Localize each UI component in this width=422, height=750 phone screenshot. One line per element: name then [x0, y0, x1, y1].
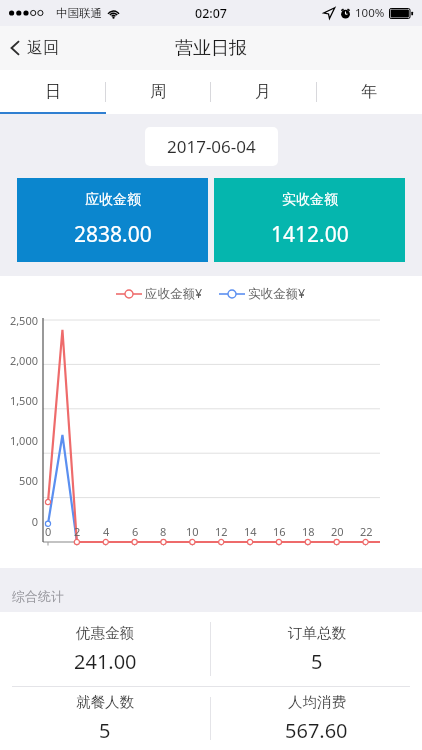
- staticText: 人均消费: [288, 693, 346, 711]
- button[interactable]: 应收金额: [17, 178, 208, 262]
- button[interactable]: 就餐人数: [0, 687, 210, 750]
- staticText: 应收金额: [85, 191, 141, 209]
- staticText: 0: [45, 524, 52, 539]
- button[interactable]: 订单总数: [211, 612, 422, 686]
- staticText: 返回: [27, 38, 59, 58]
- button[interactable]: 优惠金额: [0, 612, 210, 686]
- staticText: 18: [302, 524, 315, 539]
- staticText: 4: [103, 524, 110, 539]
- staticText: 2,000: [9, 353, 38, 368]
- staticText: 实收金额: [282, 191, 338, 209]
- staticText: 16: [273, 524, 286, 539]
- button[interactable]: 周: [105, 70, 210, 114]
- staticText: 订单总数: [288, 624, 346, 642]
- staticText: 500: [19, 473, 38, 488]
- staticText: 2838.00: [74, 220, 152, 249]
- staticText: 241.00: [74, 648, 137, 675]
- staticText: 5: [99, 717, 111, 744]
- staticText: 22: [360, 524, 373, 539]
- staticText: 567.60: [285, 717, 348, 744]
- staticText: 综合统计: [12, 588, 64, 604]
- staticText: 日: [45, 82, 61, 102]
- staticText: 02:07: [195, 5, 228, 22]
- staticText: 2017-06-04: [167, 135, 256, 158]
- button[interactable]: 人均消费: [211, 687, 422, 750]
- staticText: 0: [31, 514, 38, 529]
- staticText: 营业日报: [175, 37, 247, 60]
- button[interactable]: 月: [210, 70, 316, 114]
- staticText: 12: [215, 524, 228, 539]
- staticText: 1,500: [9, 393, 38, 408]
- staticText: 6: [132, 524, 139, 539]
- staticText: 2,500: [9, 313, 38, 328]
- staticText: 年: [361, 82, 377, 102]
- staticText: 应收金额¥: [145, 285, 203, 302]
- staticText: 5: [311, 648, 323, 675]
- button[interactable]: 年: [316, 70, 422, 114]
- button[interactable]: 返回: [0, 32, 69, 64]
- staticText: 就餐人数: [76, 693, 134, 711]
- staticText: 2: [74, 524, 81, 539]
- staticText: 中国联通: [56, 6, 102, 20]
- staticText: 周: [150, 82, 166, 102]
- staticText: 1,000: [9, 433, 38, 448]
- staticText: 优惠金额: [76, 624, 134, 642]
- button[interactable]: 2017-06-04: [145, 127, 278, 166]
- staticText: 实收金额¥: [248, 285, 306, 302]
- button[interactable]: 实收金额: [214, 178, 405, 262]
- staticText: 14: [244, 524, 257, 539]
- staticText: 100%: [355, 5, 385, 21]
- staticText: 1412.00: [271, 220, 349, 249]
- button[interactable]: 日: [0, 70, 105, 114]
- staticText: 月: [255, 82, 271, 102]
- staticText: 10: [186, 524, 199, 539]
- staticText: 8: [160, 524, 167, 539]
- staticText: 20: [331, 524, 344, 539]
